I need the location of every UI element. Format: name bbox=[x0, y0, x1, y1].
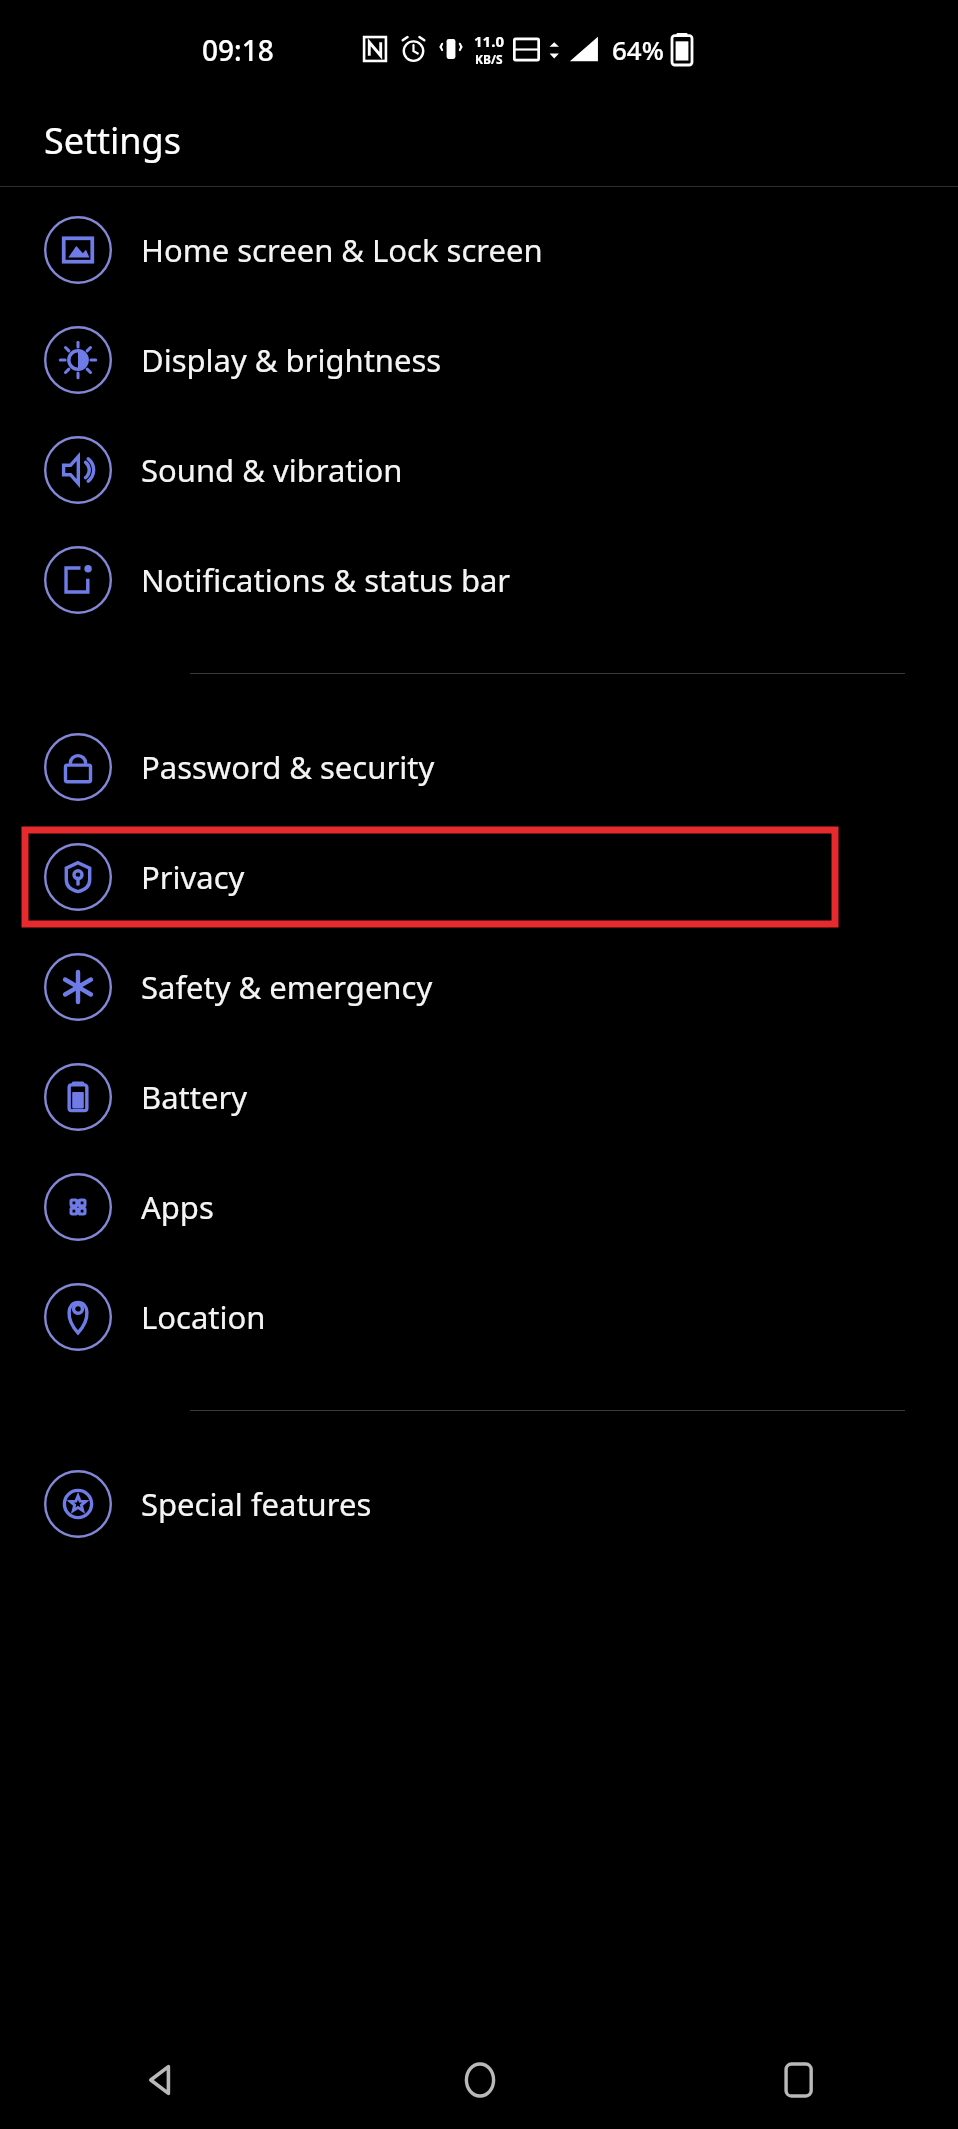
button[interactable]: Safety & emergency bbox=[0, 932, 958, 1042]
staticText: Sound & vibration bbox=[141, 449, 403, 491]
staticText: Notifications & status bar bbox=[141, 559, 511, 601]
staticText: 11.0 bbox=[474, 31, 504, 51]
button[interactable]: Privacy bbox=[0, 822, 958, 932]
button[interactable]: Home screen & Lock screen bbox=[0, 195, 958, 305]
button[interactable]: Home bbox=[320, 2030, 639, 2129]
button[interactable]: Back bbox=[0, 2030, 320, 2129]
staticText: Settings bbox=[44, 116, 181, 165]
button[interactable]: Sound & vibration bbox=[0, 415, 958, 525]
staticText: Home screen & Lock screen bbox=[141, 229, 543, 271]
staticText: Privacy bbox=[141, 856, 245, 898]
staticText: Location bbox=[141, 1296, 266, 1338]
button[interactable]: Battery bbox=[0, 1042, 958, 1152]
staticText: Safety & emergency bbox=[141, 966, 433, 1008]
button[interactable]: Location bbox=[0, 1262, 958, 1372]
staticText: Special features bbox=[141, 1483, 372, 1525]
staticText: 09:18 bbox=[202, 31, 274, 69]
button[interactable]: Display & brightness bbox=[0, 305, 958, 415]
staticText: Apps bbox=[141, 1186, 214, 1228]
button[interactable]: Password & security bbox=[0, 712, 958, 822]
staticText: Battery bbox=[141, 1076, 248, 1118]
staticText: KB/S bbox=[475, 51, 503, 67]
staticText: 64% bbox=[612, 32, 664, 67]
button[interactable]: Recent apps bbox=[639, 2030, 958, 2129]
staticText: Password & security bbox=[141, 746, 435, 788]
button[interactable]: Notifications & status bar bbox=[0, 525, 958, 635]
staticText: Display & brightness bbox=[141, 339, 442, 381]
button[interactable]: Apps bbox=[0, 1152, 958, 1262]
button[interactable]: Special features bbox=[0, 1449, 958, 1559]
